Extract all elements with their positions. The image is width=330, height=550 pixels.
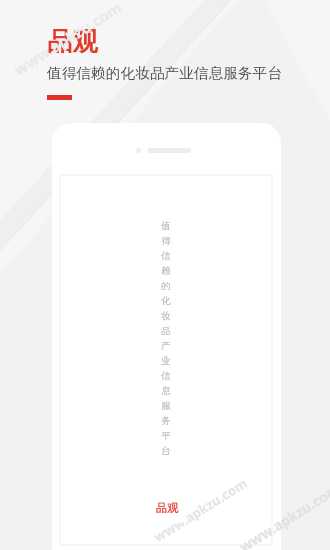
staticText: www.apkzu.com xyxy=(10,0,126,79)
button[interactable]: 品观 xyxy=(148,493,185,523)
staticText: 业 xyxy=(161,355,171,367)
staticText: 得 xyxy=(161,235,171,247)
staticText: 值得信赖的化妆品产业信息服务平台 xyxy=(47,64,283,82)
staticText: 赖 xyxy=(161,265,171,277)
staticText: 服 xyxy=(161,400,171,412)
staticText: 平 xyxy=(161,430,171,442)
staticText: 化 xyxy=(161,295,171,307)
staticText: 品观 xyxy=(47,26,98,57)
staticText: 务 xyxy=(161,415,171,427)
staticText: 的 xyxy=(161,280,171,292)
staticText: 品 xyxy=(161,325,171,337)
staticText: 品观 xyxy=(156,501,178,515)
staticText: 息 xyxy=(161,385,171,397)
staticText: 台 xyxy=(161,445,171,457)
staticText: 产 xyxy=(161,340,171,352)
staticText: 信 xyxy=(161,250,171,262)
staticText: 信 xyxy=(161,370,171,382)
staticText: www.apkzu.com xyxy=(150,474,251,546)
staticText: 妆 xyxy=(161,310,171,322)
staticText: www.apkzu.com xyxy=(236,479,330,550)
other: watermark xyxy=(236,479,330,550)
staticText: 值 xyxy=(161,220,171,232)
